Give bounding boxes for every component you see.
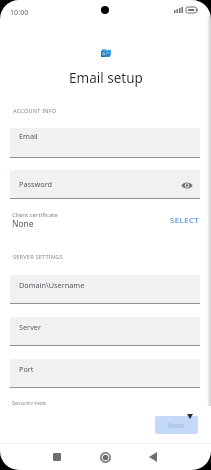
button[interactable]: Port [10, 359, 200, 388]
staticText: Domain\Username [19, 280, 85, 290]
staticText: Client certificate [12, 211, 58, 219]
staticText: SELECT [170, 215, 200, 226]
staticText: 10:00 [10, 7, 29, 17]
button[interactable]: Client certificate [0, 209, 211, 235]
staticText: None [12, 218, 34, 230]
staticText: Email [19, 131, 38, 141]
staticText: Next [168, 420, 185, 430]
staticText: SERVER SETTINGS [13, 253, 63, 261]
button[interactable]: Email [10, 128, 200, 158]
button[interactable]: Server [10, 317, 200, 346]
button[interactable]: Next [155, 416, 198, 434]
staticText: Security type [12, 399, 46, 407]
button[interactable]: Domain\Username [10, 275, 200, 304]
button[interactable]: Home [93, 445, 117, 469]
button[interactable]: Recent apps [45, 445, 69, 469]
button[interactable]: Show password [179, 177, 195, 193]
staticText: Port [19, 364, 34, 374]
staticText: Password [19, 179, 53, 189]
staticText: Server [19, 322, 41, 332]
button[interactable]: Back [141, 445, 165, 469]
button[interactable]: Password [10, 170, 200, 199]
staticText: Email setup [69, 69, 143, 87]
staticText: ACCOUNT INFO [13, 107, 57, 115]
